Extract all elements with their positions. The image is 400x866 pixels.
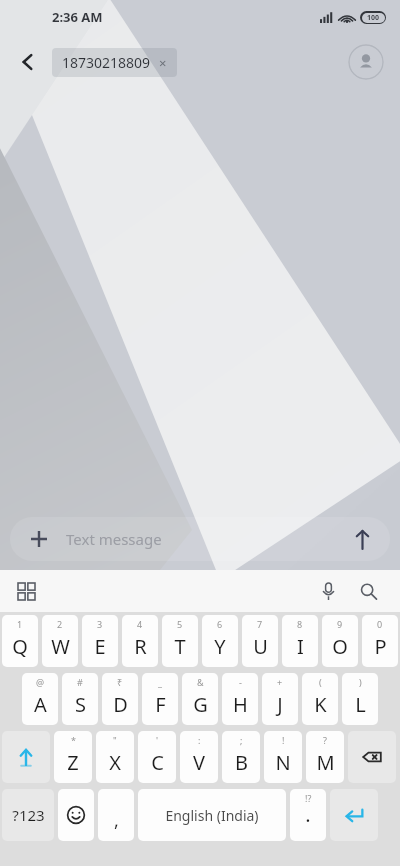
button[interactable]: Voice input (308, 571, 348, 611)
staticText: I (297, 633, 304, 660)
staticText: ( (319, 676, 322, 688)
button[interactable]: Text message (10, 517, 390, 561)
staticText: · (305, 807, 311, 834)
button[interactable]: ₹ (102, 673, 138, 725)
button[interactable]: ) (342, 673, 378, 725)
staticText: 1 (17, 618, 23, 630)
button[interactable]: Send (342, 519, 382, 559)
button[interactable]: ! (264, 731, 302, 783)
button[interactable]: 6 (202, 615, 238, 667)
staticText: M (316, 749, 335, 776)
staticText: 7 (257, 618, 263, 630)
staticText: S (75, 691, 86, 718)
button[interactable]: ( (302, 673, 338, 725)
staticText: _ (158, 676, 162, 688)
staticText: 18730218809 (62, 53, 151, 72)
button[interactable] (58, 789, 94, 841)
staticText: L (355, 691, 366, 718)
button[interactable]: : (180, 731, 218, 783)
button[interactable]: @ (22, 673, 58, 725)
staticText: B (235, 749, 248, 776)
staticText: 0 (377, 618, 383, 630)
staticText: R (134, 633, 147, 660)
button[interactable]: " (96, 731, 134, 783)
button[interactable]: _ (142, 673, 178, 725)
staticText: F (155, 691, 166, 718)
staticText: W (51, 633, 70, 660)
staticText: ; (240, 734, 243, 746)
staticText: ! (282, 734, 285, 746)
staticText: T (174, 633, 186, 660)
button[interactable]: 5 (162, 615, 198, 667)
staticText: English (India) (165, 806, 259, 825)
staticText: : (198, 734, 201, 746)
button[interactable]: ?123 (2, 789, 54, 841)
button[interactable] (2, 731, 50, 783)
staticText: ? (323, 734, 327, 746)
staticText: J (277, 691, 283, 718)
staticText: P (374, 633, 387, 660)
button[interactable]: Keyboard menu (8, 573, 44, 609)
staticText: N (275, 749, 291, 776)
button[interactable]: ; (222, 731, 260, 783)
button[interactable]: 4 (122, 615, 158, 667)
staticText: Text message (66, 529, 162, 549)
staticText: ?123 (12, 805, 45, 825)
button[interactable]: English (India) (138, 789, 286, 841)
staticText: 4 (137, 618, 143, 630)
button[interactable]: Search (348, 571, 388, 611)
button[interactable]: !? (290, 789, 326, 841)
staticText: Z (67, 749, 79, 776)
staticText: O (332, 633, 348, 660)
staticText: × (159, 54, 167, 72)
staticText: 3 (97, 618, 103, 630)
staticText: - (239, 676, 242, 688)
staticText: 5 (177, 618, 183, 630)
staticText: D (113, 691, 128, 718)
button[interactable]: , (98, 789, 134, 841)
staticText: C (151, 749, 164, 776)
button[interactable]: # (62, 673, 98, 725)
staticText: 2:36 AM (52, 8, 103, 26)
staticText: 8 (297, 618, 303, 630)
staticText: * (71, 734, 76, 746)
button[interactable] (348, 731, 396, 783)
staticText: 100 (367, 13, 380, 23)
staticText: # (77, 676, 83, 688)
button[interactable]: 2 (42, 615, 78, 667)
button[interactable] (330, 789, 378, 841)
staticText: + (277, 676, 283, 688)
button[interactable]: 9 (322, 615, 358, 667)
button[interactable]: 3 (82, 615, 118, 667)
button[interactable]: Back (8, 42, 48, 82)
button[interactable]: + (262, 673, 298, 725)
button[interactable]: * (54, 731, 92, 783)
staticText: Y (214, 633, 226, 660)
staticText: 9 (337, 618, 343, 630)
staticText: X (109, 749, 121, 776)
button[interactable]: - (222, 673, 258, 725)
staticText: 2 (57, 618, 63, 630)
staticText: ) (359, 676, 362, 688)
button[interactable]: Contacts (348, 44, 384, 80)
staticText: ' (156, 734, 159, 746)
staticText: 6 (217, 618, 223, 630)
staticText: U (253, 633, 268, 660)
staticText: @ (36, 676, 45, 688)
staticText: " (113, 734, 117, 746)
staticText: E (94, 633, 106, 660)
button[interactable]: 1 (2, 615, 38, 667)
button[interactable]: 7 (242, 615, 278, 667)
staticText: Q (12, 633, 28, 660)
staticText: A (34, 691, 47, 718)
button[interactable]: 0 (362, 615, 398, 667)
staticText: , (114, 808, 119, 833)
staticText: G (193, 691, 208, 718)
staticText: K (314, 691, 327, 718)
staticText: !? (305, 792, 312, 804)
button[interactable]: & (182, 673, 218, 725)
button[interactable]: ' (138, 731, 176, 783)
button[interactable]: 8 (282, 615, 318, 667)
button[interactable]: 18730218809 (52, 48, 177, 77)
button[interactable]: ? (306, 731, 344, 783)
